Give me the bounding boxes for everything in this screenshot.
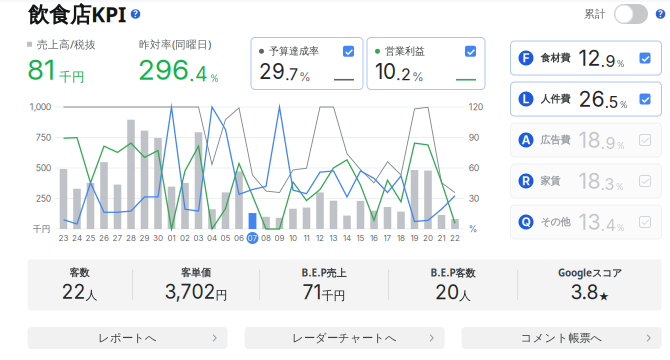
staticText: 10 [289, 233, 297, 243]
staticText: Googleスコア [558, 266, 622, 279]
staticText: 296 [138, 52, 189, 86]
staticText: ％ [209, 71, 220, 85]
staticText: 累計 [584, 7, 606, 21]
staticText: ✓ [640, 174, 649, 187]
button[interactable]: レポートへ [28, 327, 228, 349]
staticText: コメント帳票へ [521, 331, 603, 345]
staticText: ✓ [640, 51, 649, 64]
staticText: 22 [62, 280, 86, 303]
button[interactable]: 累計表示切替 [614, 4, 648, 24]
staticText: ％ [614, 180, 624, 193]
staticText: 60 [469, 163, 479, 173]
staticText: 81 [27, 52, 55, 86]
staticText: 07 [247, 233, 257, 243]
staticText: 17 [383, 233, 391, 243]
staticText: レポートへ [98, 331, 157, 345]
button[interactable]: A [510, 123, 661, 157]
staticText: 3,702 [165, 280, 216, 303]
button[interactable]: R [510, 164, 661, 198]
staticText: 11 [303, 233, 309, 243]
staticText: B.E.P客数 [431, 266, 476, 279]
button[interactable]: Q [510, 205, 661, 239]
staticText: 26 [99, 233, 109, 243]
staticText: ✓ [466, 45, 475, 58]
staticText: 円 [216, 288, 228, 303]
staticText: ? [133, 9, 138, 19]
staticText: 3.8 [571, 280, 599, 304]
staticText: 千円 [322, 288, 346, 303]
staticText: レーダーチャートへ [292, 331, 397, 345]
staticText: 人 [459, 288, 471, 303]
staticText: 71 [303, 280, 322, 304]
staticText: ％ [615, 221, 625, 234]
button[interactable]: F [510, 41, 661, 75]
staticText: 家賃 [540, 175, 560, 187]
staticText: 千円 [59, 69, 85, 85]
staticText: .3 [600, 174, 614, 194]
staticText: ? [658, 9, 663, 19]
staticText: Q [521, 215, 530, 229]
button[interactable]: ヘルプ [655, 8, 666, 19]
staticText: 04 [207, 233, 217, 243]
staticText: ✓ [640, 92, 649, 105]
staticText: R [522, 174, 530, 188]
staticText: L [522, 92, 529, 106]
staticText: .4 [189, 62, 207, 86]
button[interactable]: コメント帳票へ [462, 327, 662, 349]
staticText: 750 [36, 132, 51, 143]
staticText: 250 [36, 193, 51, 204]
button[interactable]: 営業利益 [367, 37, 485, 89]
staticText: 22 [450, 233, 460, 243]
staticText: 14 [343, 233, 351, 243]
staticText: ✓ [344, 45, 353, 58]
staticText: 売上高/税抜 [37, 37, 96, 51]
staticText: 23 [58, 233, 68, 243]
staticText: % [299, 69, 311, 84]
staticText: 06 [234, 233, 244, 243]
staticText: 予算達成率 [269, 45, 319, 58]
staticText: F [522, 51, 529, 65]
staticText: 飲食店KPI [28, 0, 126, 29]
button[interactable]: L [510, 82, 661, 116]
staticText: 30 [469, 193, 479, 204]
staticText: 20 [423, 233, 433, 243]
staticText: 24 [72, 233, 82, 243]
staticText: 16 [370, 233, 378, 243]
staticText: 15 [356, 233, 364, 243]
button[interactable]: 予算達成率 [251, 37, 363, 89]
staticText: 18 [578, 127, 600, 153]
staticText: .9 [600, 133, 615, 153]
staticText: 08 [261, 233, 271, 243]
staticText: 営業利益 [385, 45, 425, 58]
staticText: 29 [259, 59, 285, 84]
staticText: 広告費 [540, 134, 570, 146]
staticText: 05 [220, 233, 230, 243]
staticText: 01 [167, 233, 175, 243]
button[interactable]: ヘルプ [130, 8, 141, 19]
staticText: 12 [316, 233, 324, 243]
staticText: 25 [85, 233, 95, 243]
staticText: .4 [600, 215, 615, 235]
staticText: 21 [437, 233, 445, 243]
staticText: 18 [578, 168, 600, 194]
staticText: 客数 [70, 266, 90, 279]
staticText: 30 [153, 233, 163, 243]
staticText: 90 [469, 132, 479, 143]
staticText: 食材費 [540, 52, 570, 64]
staticText: ✓ [640, 215, 649, 228]
button[interactable]: レーダーチャートへ [245, 327, 445, 349]
staticText: .5 [604, 92, 618, 112]
staticText: ％ [615, 139, 625, 152]
staticText: 27 [112, 233, 122, 243]
staticText: ％ [618, 98, 628, 111]
staticText: 13 [329, 233, 337, 243]
staticText: 19 [410, 233, 418, 243]
staticText: 26 [578, 86, 604, 112]
staticText: 500 [36, 163, 51, 173]
staticText: 12 [578, 45, 600, 71]
staticText: % [469, 224, 478, 234]
staticText: 28 [126, 233, 136, 243]
staticText: ％ [615, 57, 625, 70]
staticText: 03 [193, 233, 203, 243]
staticText: .7 [285, 65, 298, 84]
